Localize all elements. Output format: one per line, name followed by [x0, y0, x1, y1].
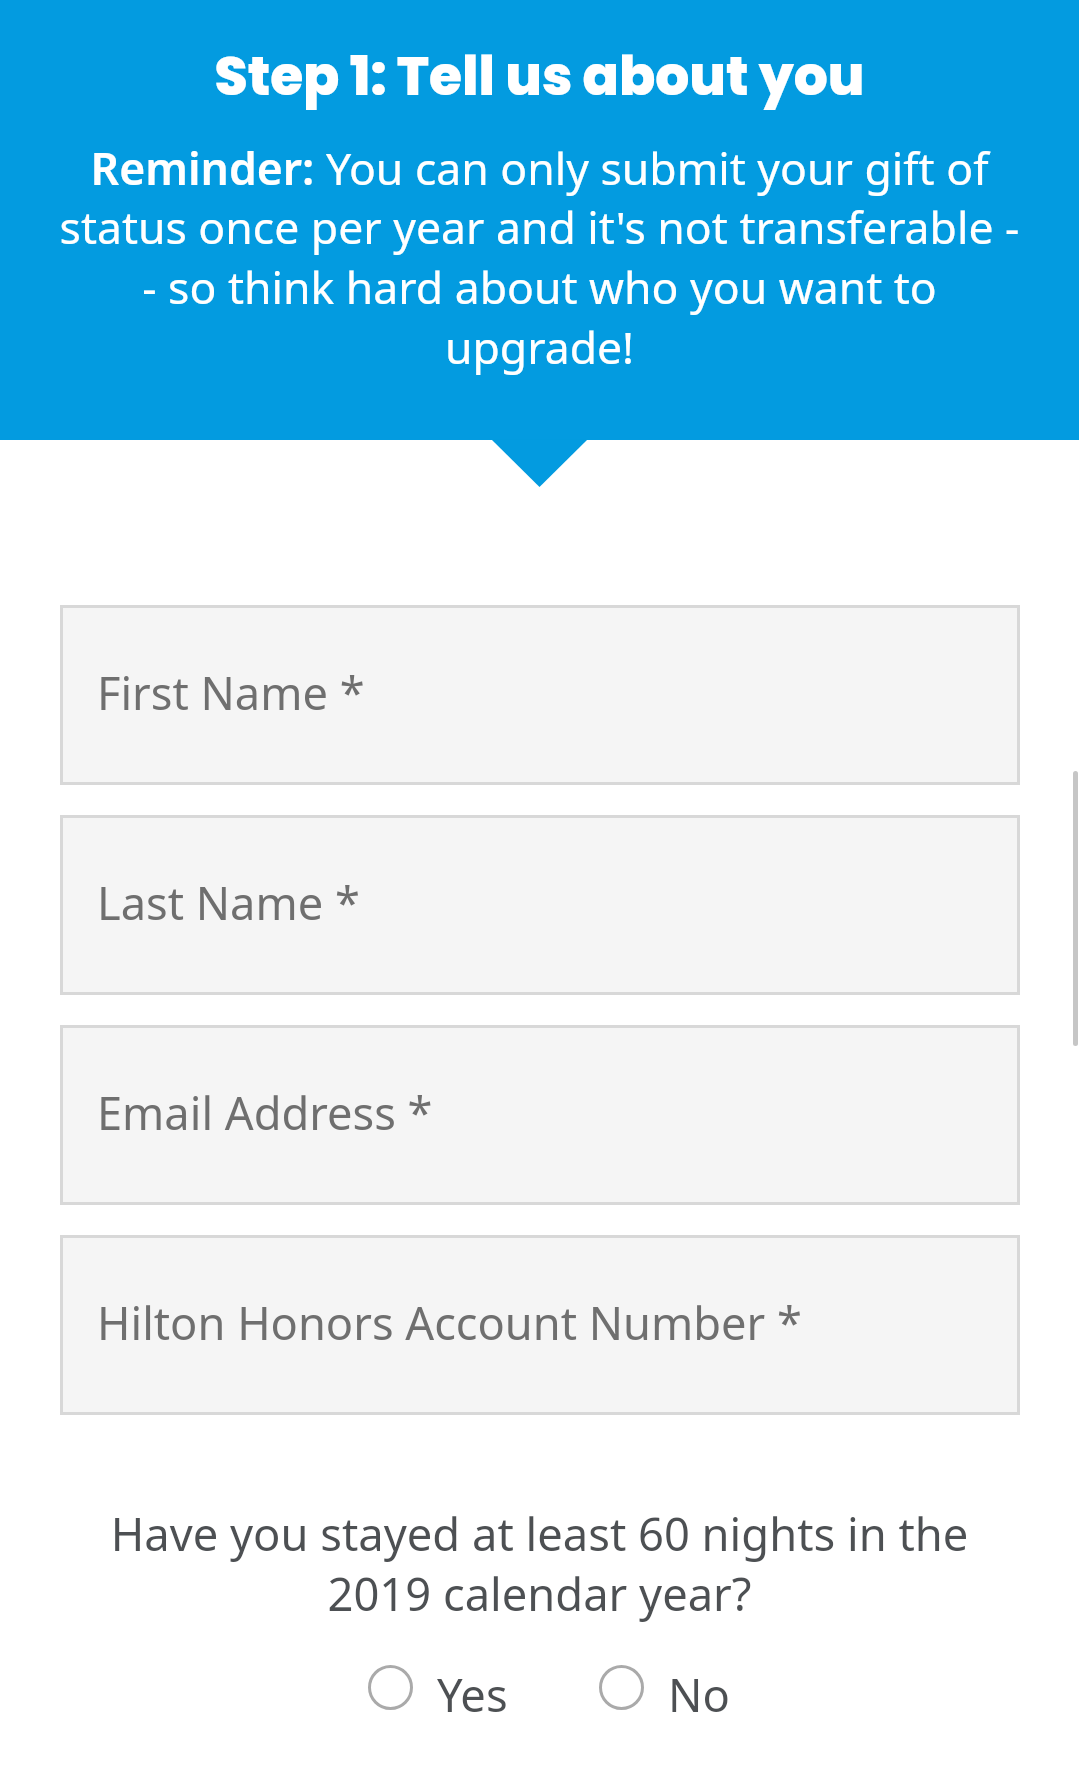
staticText: Step 1: Tell us about you	[214, 39, 865, 114]
button[interactable]: First Name *	[60, 605, 1020, 785]
staticText: No	[668, 1664, 730, 1726]
button[interactable]: No	[599, 1656, 730, 1718]
staticText: Yes	[437, 1664, 508, 1726]
button[interactable]: Hilton Honors Account Number *	[60, 1235, 1020, 1415]
staticText: Reminder: You can only submit your gift …	[0, 137, 1079, 377]
button[interactable]: Last Name *	[60, 815, 1020, 995]
button[interactable]: Email Address *	[60, 1025, 1020, 1205]
staticText: Email Address *	[97, 1082, 433, 1144]
staticText: First Name *	[97, 662, 365, 724]
button[interactable]: Yes	[368, 1656, 508, 1718]
staticText: Have you stayed at least 60 nights in th…	[0, 1503, 1079, 1624]
staticText: Hilton Honors Account Number *	[97, 1292, 802, 1354]
staticText: Last Name *	[97, 872, 360, 934]
